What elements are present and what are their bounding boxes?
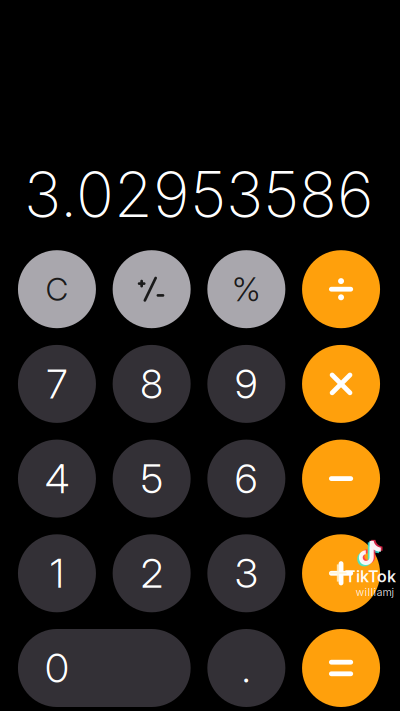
staticText: C bbox=[45, 270, 68, 308]
staticText: 5 bbox=[141, 454, 163, 503]
button[interactable]: 4 bbox=[18, 440, 96, 518]
button[interactable]: 5 bbox=[113, 440, 191, 518]
button[interactable]: Percent bbox=[207, 250, 285, 328]
button[interactable]: 3 bbox=[207, 534, 285, 612]
button[interactable]: Subtract bbox=[302, 440, 380, 518]
button[interactable]: Add bbox=[302, 534, 380, 612]
button[interactable]: Zero bbox=[18, 629, 191, 707]
staticText: . bbox=[242, 644, 251, 692]
button[interactable]: Plus minus bbox=[113, 250, 191, 328]
staticText: 3 bbox=[235, 549, 258, 597]
staticText: 7 bbox=[46, 360, 67, 408]
button[interactable]: 6 bbox=[207, 440, 285, 518]
button[interactable]: 1 bbox=[18, 534, 96, 612]
staticText: 0 bbox=[45, 644, 69, 692]
staticText: 3.02953586 bbox=[24, 156, 374, 232]
staticText: 9 bbox=[235, 360, 258, 408]
staticText: TikTok bbox=[345, 567, 396, 586]
button[interactable]: 2 bbox=[113, 534, 191, 612]
staticText: williamj bbox=[355, 585, 394, 598]
button[interactable]: Divide bbox=[302, 250, 380, 328]
button[interactable]: 9 bbox=[207, 345, 285, 423]
staticText: % bbox=[232, 269, 261, 309]
staticText: 4 bbox=[45, 454, 69, 503]
button[interactable]: Multiply bbox=[302, 345, 380, 423]
staticText: 1 bbox=[50, 549, 64, 597]
button[interactable]: 7 bbox=[18, 345, 96, 423]
button[interactable]: Equals bbox=[302, 629, 380, 707]
staticText: 8 bbox=[140, 360, 163, 408]
button[interactable]: Decimal point bbox=[207, 629, 285, 707]
staticText: 2 bbox=[141, 549, 163, 597]
button[interactable]: Clear bbox=[18, 250, 96, 328]
staticText: 6 bbox=[235, 454, 258, 503]
button[interactable]: 8 bbox=[113, 345, 191, 423]
